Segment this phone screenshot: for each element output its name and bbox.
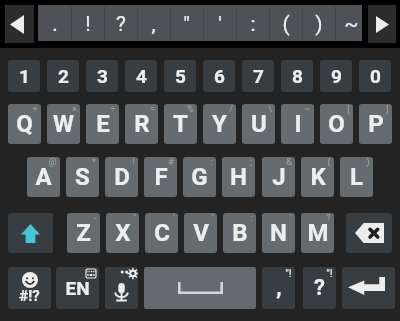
button[interactable]: Space bbox=[144, 267, 256, 309]
staticText: . bbox=[52, 12, 58, 37]
button[interactable]: . bbox=[38, 5, 71, 41]
staticText: , bbox=[151, 12, 156, 37]
button[interactable]: Enter bbox=[342, 267, 395, 309]
button[interactable]: 0 bbox=[359, 60, 391, 92]
staticText: X bbox=[115, 219, 131, 247]
staticText: ' bbox=[218, 12, 222, 37]
button[interactable]: 4 bbox=[125, 60, 157, 92]
button[interactable]: M bbox=[301, 213, 334, 253]
staticText: [ bbox=[347, 104, 350, 115]
button[interactable]: 2 bbox=[47, 60, 79, 92]
button[interactable]: B bbox=[223, 213, 256, 253]
button[interactable]: F bbox=[144, 157, 177, 197]
button[interactable]: Voice input bbox=[105, 267, 138, 309]
button[interactable]: Shift bbox=[8, 213, 53, 253]
button[interactable]: K bbox=[301, 157, 334, 197]
staticText: @ bbox=[48, 157, 57, 168]
staticText: & bbox=[286, 157, 292, 168]
button[interactable]: : bbox=[236, 5, 269, 41]
button[interactable]: V bbox=[184, 213, 217, 253]
staticText: B bbox=[232, 219, 248, 247]
staticText: W bbox=[53, 110, 74, 138]
button[interactable]: I bbox=[281, 104, 314, 144]
staticText: % bbox=[187, 104, 194, 115]
staticText: " bbox=[183, 12, 190, 37]
button[interactable]: 1 bbox=[8, 60, 40, 92]
staticText: H bbox=[230, 163, 247, 191]
staticText: K bbox=[310, 163, 326, 191]
button[interactable]: T bbox=[164, 104, 197, 144]
staticText: D bbox=[114, 163, 130, 191]
staticText: ) bbox=[315, 12, 323, 37]
staticText: : bbox=[250, 12, 256, 37]
button[interactable]: ? bbox=[104, 5, 137, 41]
staticText: / bbox=[229, 104, 233, 115]
button[interactable]: 9 bbox=[320, 60, 352, 92]
button[interactable]: G bbox=[183, 157, 216, 197]
staticText: I bbox=[294, 110, 302, 138]
staticText: U bbox=[251, 110, 267, 138]
button[interactable]: R bbox=[125, 104, 158, 144]
staticText: ' bbox=[173, 213, 175, 224]
staticText: J bbox=[272, 163, 286, 191]
button[interactable]: A bbox=[27, 157, 60, 197]
button[interactable]: U bbox=[242, 104, 275, 144]
staticText: " bbox=[211, 213, 214, 224]
button[interactable]: Y bbox=[203, 104, 236, 144]
button[interactable]: P bbox=[359, 104, 392, 144]
button[interactable]: Symbols and emoji bbox=[8, 267, 51, 309]
button[interactable]: C bbox=[145, 213, 178, 253]
button[interactable]: D bbox=[105, 157, 138, 197]
button[interactable]: N bbox=[262, 213, 295, 253]
button[interactable]: ) bbox=[302, 5, 335, 41]
button[interactable]: 7 bbox=[242, 60, 274, 92]
staticText: 6 bbox=[214, 65, 225, 87]
staticText: " bbox=[133, 213, 136, 224]
staticText: 8 bbox=[292, 65, 303, 87]
button[interactable]: 6 bbox=[203, 60, 235, 92]
button[interactable]: ? bbox=[303, 267, 336, 309]
button[interactable]: Z bbox=[67, 213, 100, 253]
staticText: ! bbox=[132, 157, 135, 168]
button[interactable]: L bbox=[340, 157, 373, 197]
button[interactable]: H bbox=[222, 157, 255, 197]
button[interactable]: Backspace bbox=[346, 213, 392, 253]
staticText: 1 bbox=[19, 65, 30, 87]
button[interactable]: , bbox=[262, 267, 295, 309]
button[interactable]: 5 bbox=[164, 60, 196, 92]
staticText: 0 bbox=[370, 65, 381, 87]
button[interactable]: Change language bbox=[56, 267, 99, 309]
staticText: 5 bbox=[175, 65, 186, 87]
button[interactable]: O bbox=[320, 104, 353, 144]
button[interactable]: " bbox=[170, 5, 203, 41]
button[interactable]: S bbox=[66, 157, 99, 197]
button[interactable]: X bbox=[106, 213, 139, 253]
staticText: #!? bbox=[19, 287, 40, 305]
staticText: 2 bbox=[58, 65, 69, 87]
button[interactable]: ! bbox=[71, 5, 104, 41]
staticText: O bbox=[328, 110, 345, 138]
button[interactable]: Q bbox=[8, 104, 41, 144]
button[interactable]: W bbox=[47, 104, 80, 144]
staticText: ~ bbox=[344, 12, 359, 37]
staticText: ? bbox=[116, 12, 126, 37]
button[interactable]: 8 bbox=[281, 60, 313, 92]
button[interactable]: ~ bbox=[335, 5, 362, 41]
button[interactable]: ' bbox=[203, 5, 236, 41]
button[interactable]: , bbox=[137, 5, 170, 41]
staticText: ; bbox=[250, 157, 252, 168]
staticText: V bbox=[193, 219, 209, 247]
staticText: = bbox=[150, 104, 155, 115]
staticText: 4 bbox=[136, 65, 147, 87]
staticText: G bbox=[191, 163, 208, 191]
button[interactable]: ( bbox=[269, 5, 302, 41]
button[interactable]: Previous page bbox=[5, 5, 34, 43]
staticText: \ bbox=[268, 104, 272, 115]
staticText: ( bbox=[327, 157, 331, 168]
button[interactable]: Next page bbox=[368, 5, 396, 43]
button[interactable]: E bbox=[86, 104, 119, 144]
button[interactable]: 3 bbox=[86, 60, 118, 92]
staticText: S bbox=[75, 163, 90, 191]
staticText: , bbox=[276, 275, 282, 301]
button[interactable]: J bbox=[262, 157, 295, 197]
